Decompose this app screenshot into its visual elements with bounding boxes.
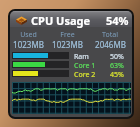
staticText: Core 2 (74, 70, 96, 80)
staticText: 54% (106, 13, 129, 28)
other: CPU (15, 13, 28, 26)
staticText: Ram (74, 52, 89, 62)
staticText: 1023MB (52, 39, 83, 50)
staticText: 1023MB (13, 39, 44, 50)
staticText: CPU Usage (31, 13, 91, 28)
staticText: 2046MB (95, 39, 126, 50)
staticText: Core 1 (74, 61, 96, 71)
staticText: Used (20, 30, 37, 40)
button[interactable]: CPU (10, 11, 132, 27)
staticText: 63% (110, 61, 124, 71)
staticText: 45% (110, 70, 124, 80)
staticText: 50% (110, 52, 124, 62)
staticText: Total (102, 30, 118, 40)
staticText: Free (60, 30, 75, 40)
